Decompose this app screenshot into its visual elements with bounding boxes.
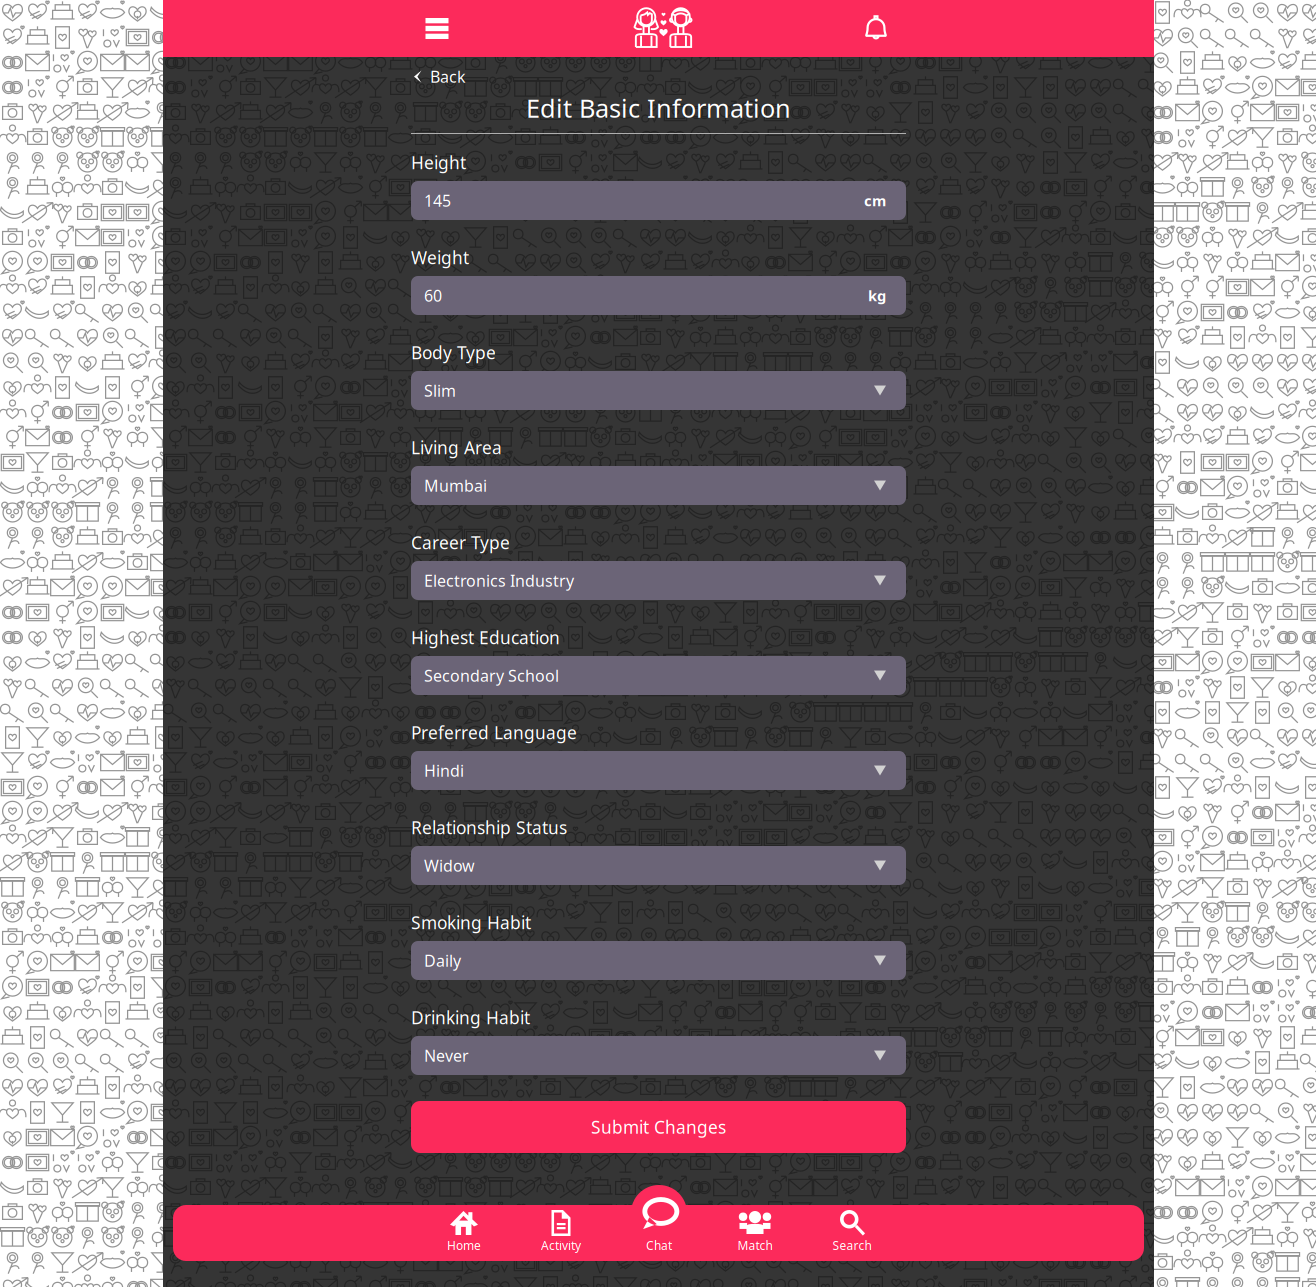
button[interactable]: Notifications [839,0,913,57]
staticText: 60 [424,285,442,306]
staticText: Relationship Status [411,816,567,839]
button[interactable]: Activity [512,1205,609,1261]
button[interactable]: Daily [411,941,906,980]
button[interactable]: Slim [411,371,906,410]
staticText: Match [737,1237,772,1253]
button[interactable]: Hindi [411,751,906,790]
staticText: Living Area [411,436,502,459]
staticText: Chat [646,1237,672,1253]
staticText: Widow [424,855,475,876]
staticText: Secondary School [424,665,559,686]
button[interactable]: Chat [610,1205,707,1261]
staticText: Weight [411,246,469,269]
staticText: Home [447,1237,481,1253]
button[interactable]: Home [415,1205,512,1261]
staticText: Height [411,151,466,174]
staticText: Slim [424,380,456,401]
staticText: Body Type [411,341,496,364]
button[interactable]: Mumbai [411,466,906,505]
button[interactable]: Widow [411,846,906,885]
button[interactable]: Back [414,61,466,92]
staticText: Career Type [411,531,510,554]
button[interactable]: 145 [411,181,906,220]
button[interactable]: Electronics Industry [411,561,906,600]
staticText: Search [832,1237,871,1253]
staticText: Drinking Habit [411,1006,530,1029]
staticText: Activity [541,1237,581,1253]
button[interactable]: Secondary School [411,656,906,695]
staticText: Submit Changes [591,1115,726,1138]
staticText: Electronics Industry [424,570,574,591]
staticText: Highest Education [411,626,560,649]
staticText: kg [868,286,886,305]
staticText: Preferred Language [411,721,577,744]
staticText: Edit Basic Information [526,91,791,125]
button[interactable]: Never [411,1036,906,1075]
staticText: Smoking Habit [411,911,531,934]
button[interactable]: Search [803,1205,900,1261]
button[interactable]: Menu [392,0,482,57]
staticText: Daily [424,950,461,971]
staticText: cm [864,191,886,210]
staticText: Mumbai [424,475,487,496]
button[interactable]: Match [706,1205,803,1261]
staticText: Never [424,1045,469,1066]
staticText: 145 [424,190,451,211]
staticText: Back [430,66,466,87]
staticText: Hindi [424,760,464,781]
button[interactable]: 60 [411,276,906,315]
button[interactable]: Submit Changes [411,1101,906,1153]
